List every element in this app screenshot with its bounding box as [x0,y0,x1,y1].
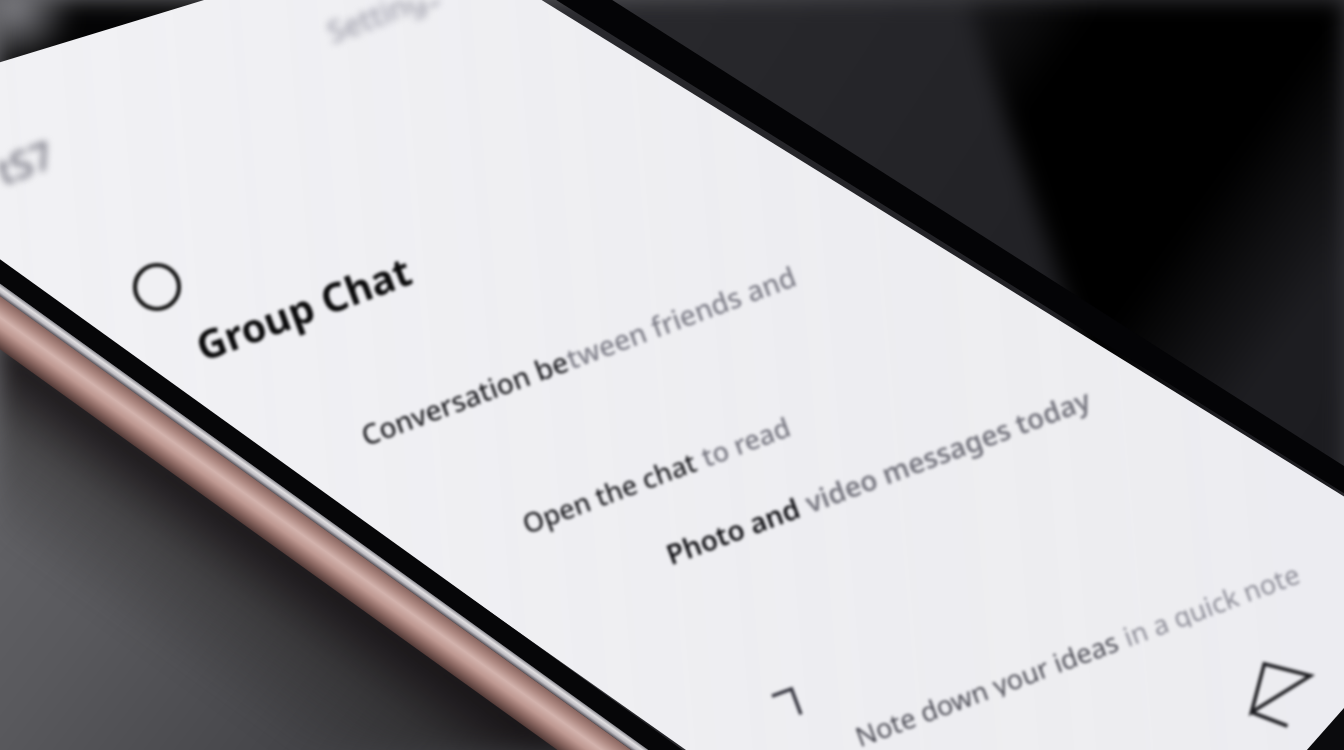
button[interactable]: Send [1232,640,1328,736]
button[interactable] [510,470,850,570]
button[interactable] [350,380,870,490]
button[interactable] [655,500,1095,605]
button[interactable] [190,250,450,365]
button[interactable]: Back [122,252,194,324]
button[interactable] [845,640,1295,750]
